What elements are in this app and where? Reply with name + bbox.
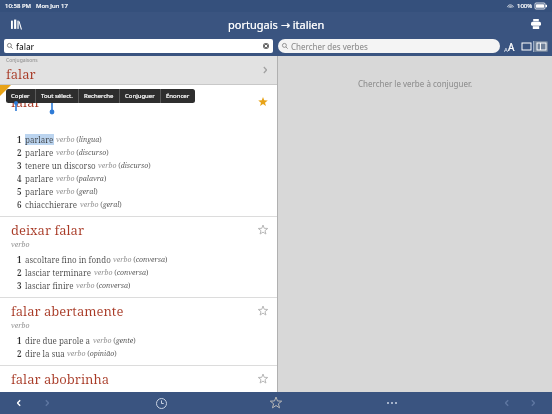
button[interactable]: Print	[528, 16, 544, 32]
staticText: 2	[17, 267, 22, 278]
staticText: falar abobrinha	[11, 370, 109, 387]
button[interactable]: Copier	[6, 89, 35, 103]
staticText: Copier	[11, 92, 30, 100]
staticText: 5	[17, 186, 22, 197]
button[interactable]: Recherche	[79, 89, 119, 103]
staticText: parlare	[25, 173, 54, 184]
staticText: verbo (conversa)	[76, 281, 131, 291]
staticText: verbo (discurso)	[56, 148, 109, 158]
button[interactable]: falar	[4, 39, 273, 53]
button[interactable]: Clear	[261, 41, 271, 51]
button[interactable]: Tout sélect.	[36, 89, 78, 103]
staticText: verbo (conversa)	[113, 255, 168, 265]
staticText: Conjugaisons	[6, 57, 38, 64]
button[interactable]: 2	[17, 267, 277, 278]
button[interactable]: History	[151, 393, 171, 413]
staticText: falar	[16, 41, 35, 52]
staticText: tenere un discorso	[25, 160, 96, 171]
button[interactable]: 2	[17, 348, 277, 359]
button[interactable]: 3	[17, 280, 277, 291]
button[interactable]: 4	[17, 173, 277, 184]
button[interactable]: 3	[17, 160, 277, 171]
staticText: parlare	[25, 134, 54, 145]
button[interactable]: falar abertamente	[0, 298, 277, 365]
button[interactable]: 2	[17, 147, 277, 158]
staticText: chiacchierare	[25, 199, 78, 210]
staticText: falar abertamente	[11, 302, 124, 320]
staticText: falar	[6, 65, 36, 83]
staticText: falar	[11, 93, 41, 111]
staticText: A	[508, 40, 515, 54]
staticText: Chercher des verbes	[291, 41, 368, 52]
staticText: verbo (palavra)	[56, 174, 107, 184]
staticText: lasciar terminare	[25, 267, 92, 278]
button[interactable]: 6	[17, 199, 277, 210]
button[interactable]: 1	[17, 134, 277, 145]
staticText: verbo (geral)	[80, 200, 122, 210]
button[interactable]: Favorites	[266, 393, 286, 413]
staticText: Tout sélect.	[41, 92, 73, 100]
staticText: verbo (geral)	[56, 187, 98, 197]
button[interactable]: Conjugaisons	[0, 56, 277, 84]
staticText: ascoltare fino in fondo	[25, 254, 111, 265]
button[interactable]: Back	[10, 394, 28, 412]
button[interactable]: Conjuguer	[120, 89, 160, 103]
staticText: 2	[17, 348, 22, 359]
staticText: 6	[17, 199, 22, 210]
button[interactable]: Split pane	[534, 41, 548, 52]
staticText: 2	[17, 147, 22, 158]
button[interactable]: Favorite	[255, 93, 271, 111]
button[interactable]: Favorite	[255, 221, 271, 239]
staticText: 1	[17, 134, 22, 145]
staticText: Conjuguer	[125, 92, 155, 100]
staticText: 100%	[517, 2, 533, 10]
staticText: 10:58 PM	[5, 2, 31, 10]
button[interactable]: More	[382, 393, 402, 413]
button[interactable]: deixar falar	[0, 217, 277, 297]
staticText: verbo (opinião)	[67, 349, 117, 359]
staticText: dire la sua	[25, 348, 65, 359]
staticText: verbo	[11, 240, 30, 250]
staticText: verbo (gente)	[93, 336, 136, 346]
staticText: verbo (língua)	[56, 135, 102, 145]
staticText: deixar falar	[11, 221, 85, 239]
staticText: parlare	[25, 147, 54, 158]
staticText: 3	[17, 160, 22, 171]
button[interactable]: Single pane	[519, 41, 533, 52]
staticText: 1	[17, 254, 22, 265]
button[interactable]: falar abobrinha	[0, 366, 277, 392]
button[interactable]: Previous	[498, 394, 516, 412]
staticText: 4	[17, 173, 22, 184]
staticText: verbo	[11, 321, 30, 331]
staticText: lasciar finire	[25, 280, 74, 291]
staticText: Recherche	[84, 92, 114, 100]
staticText: A	[504, 46, 508, 54]
staticText: dire due parole a	[25, 335, 91, 346]
button[interactable]: Chercher des verbes	[278, 39, 500, 53]
staticText: verbo (discurso)	[98, 161, 151, 171]
staticText: 3	[17, 280, 22, 291]
staticText: Énoncer	[166, 92, 190, 100]
button[interactable]: Favorite	[255, 302, 271, 320]
button[interactable]: Text size	[504, 38, 515, 54]
staticText: Chercher le verbe à conjuguer.	[358, 78, 473, 89]
staticText: verbo (conversa)	[94, 268, 149, 278]
button[interactable]: Forward	[38, 394, 56, 412]
button[interactable]: Next	[524, 394, 542, 412]
button[interactable]: 1	[17, 254, 277, 265]
button[interactable]: Favorite	[255, 370, 271, 387]
button[interactable]: Énoncer	[161, 89, 195, 103]
button[interactable]: 5	[17, 186, 277, 197]
staticText: parlare	[25, 186, 54, 197]
button[interactable]: falar	[0, 85, 277, 216]
staticText: 1	[17, 335, 22, 346]
staticText: portugais → italien	[228, 17, 325, 32]
button[interactable]: Library	[8, 16, 24, 32]
button[interactable]: 1	[17, 335, 277, 346]
staticText: Mon Jun 17	[36, 2, 68, 10]
